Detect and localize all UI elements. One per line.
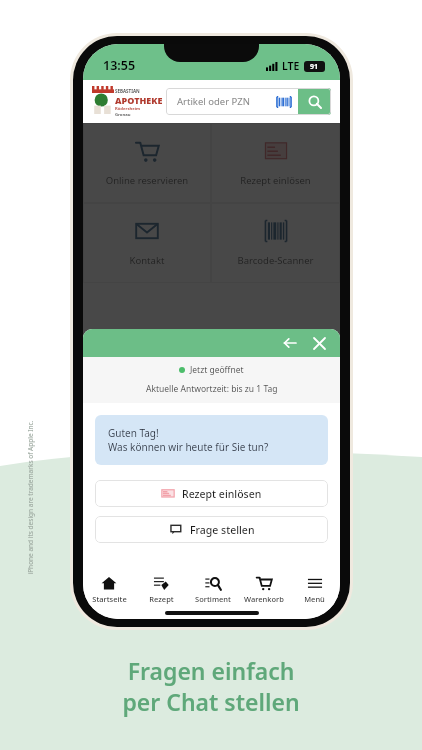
staticText: Kontakt (83, 254, 211, 267)
button[interactable]: Back (280, 333, 300, 353)
staticText: Warenkorb (244, 594, 284, 604)
staticText: Barcode-Scanner (211, 254, 340, 267)
staticText: Sortiment (195, 594, 231, 604)
button[interactable]: Warenkorb (238, 575, 289, 604)
button[interactable]: Artikel oder PZN (166, 88, 331, 115)
staticText: Rezept einlösen (211, 174, 340, 187)
staticText: Rödersheim (115, 106, 141, 112)
staticText: APOTHEKE (115, 94, 163, 106)
staticText: Menü (304, 594, 325, 604)
button[interactable]: Rezept einlösen (95, 480, 328, 507)
button[interactable]: Close (309, 333, 329, 353)
button[interactable]: Rezept (135, 575, 187, 604)
staticText: Rezept (149, 594, 174, 604)
staticText: Was können wir heute für Sie tun? (108, 440, 269, 454)
staticText: Online reservieren (83, 174, 211, 187)
staticText: Fragen einfach (0, 655, 422, 686)
staticText: per Chat stellen (0, 686, 422, 717)
staticText: Artikel oder PZN (177, 95, 250, 108)
button[interactable]: Menü (289, 575, 340, 604)
staticText: SEBASTIAN (115, 88, 140, 94)
staticText: Jetzt geöffnet (190, 364, 244, 376)
button[interactable]: Kontakt (83, 203, 211, 283)
staticText: Guten Tag! (108, 426, 159, 440)
button[interactable]: Frage stellen (95, 516, 328, 543)
button[interactable]: Online reservieren (83, 123, 211, 203)
other: Search (298, 88, 331, 115)
staticText: iPhone and its design are trademarks of … (25, 420, 34, 574)
button[interactable]: Rezept einlösen (211, 123, 340, 203)
staticText: LTE (282, 59, 300, 73)
staticText: Aktuelle Antwortzeit: bis zu 1 Tag (146, 383, 278, 395)
staticText: Rezept einlösen (182, 487, 262, 501)
staticText: Startseite (92, 594, 127, 604)
staticText: Gronau (115, 112, 131, 118)
button[interactable]: Startseite (83, 575, 135, 604)
staticText: 13:55 (103, 57, 136, 74)
staticText: 91 (310, 62, 319, 72)
staticText: Frage stellen (190, 523, 255, 537)
button[interactable]: Barcode-Scanner (211, 203, 340, 283)
button[interactable]: Sortiment (187, 575, 238, 604)
